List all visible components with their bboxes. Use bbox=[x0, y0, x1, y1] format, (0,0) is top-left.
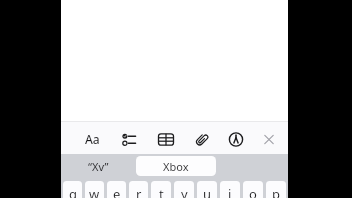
staticText: “Xv” bbox=[88, 159, 109, 174]
button[interactable]: o bbox=[243, 181, 263, 198]
staticText: t bbox=[159, 185, 164, 198]
button[interactable]: e bbox=[107, 181, 126, 198]
staticText: r bbox=[136, 185, 142, 198]
staticText: i bbox=[228, 185, 232, 198]
button[interactable] bbox=[118, 127, 142, 151]
staticText: Aa bbox=[85, 131, 100, 147]
staticText: Xbox bbox=[163, 159, 189, 174]
staticText: e bbox=[113, 185, 121, 198]
staticText: o bbox=[249, 185, 257, 198]
button[interactable]: Xbox bbox=[136, 156, 216, 176]
staticText: p bbox=[272, 185, 280, 198]
staticText: y bbox=[181, 185, 188, 198]
button[interactable]: Aa bbox=[80, 127, 104, 151]
staticText: q bbox=[69, 185, 77, 198]
button[interactable] bbox=[224, 127, 248, 151]
button[interactable]: q bbox=[63, 181, 82, 198]
button[interactable]: w bbox=[85, 181, 104, 198]
button[interactable]: u bbox=[197, 181, 217, 198]
button[interactable] bbox=[190, 127, 214, 151]
button[interactable]: p bbox=[266, 181, 286, 198]
staticText: u bbox=[203, 185, 212, 198]
button[interactable]: y bbox=[174, 181, 194, 198]
button[interactable]: “Xv” bbox=[61, 156, 136, 176]
button[interactable] bbox=[154, 127, 178, 151]
button[interactable] bbox=[257, 127, 281, 151]
staticText: w bbox=[89, 185, 100, 198]
button[interactable]: r bbox=[129, 181, 148, 198]
button[interactable]: i bbox=[220, 181, 240, 198]
button[interactable]: t bbox=[151, 181, 171, 198]
